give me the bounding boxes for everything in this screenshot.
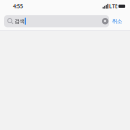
- staticText: 검색: [15, 18, 25, 24]
- staticText: LTE: [109, 3, 118, 10]
- staticText: 취소: [112, 18, 122, 24]
- button[interactable]: Clear text: [102, 18, 109, 24]
- button[interactable]: Search: [4, 15, 109, 27]
- staticText: 4:55: [13, 3, 23, 10]
- button[interactable]: 취소: [109, 15, 124, 27]
